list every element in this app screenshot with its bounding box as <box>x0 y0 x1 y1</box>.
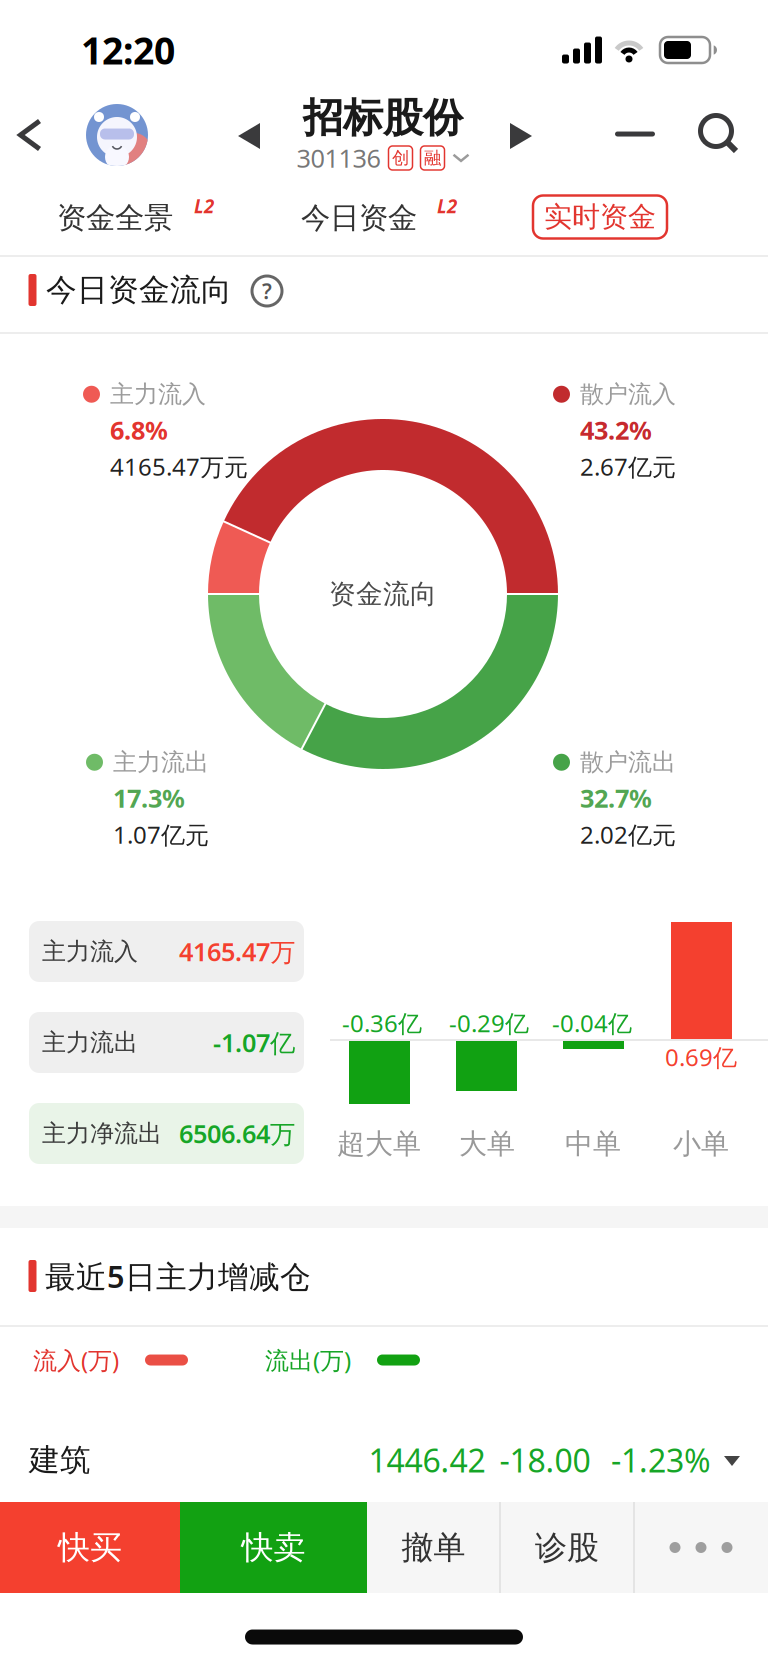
staticText: 超大单 <box>337 1127 421 1161</box>
button[interactable]: Minimize <box>615 131 655 136</box>
staticText: 实时资金 <box>544 200 656 234</box>
staticText: 43.2% <box>580 413 652 447</box>
staticText: 4165.47万元 <box>110 451 248 482</box>
button[interactable]: 诊股 <box>500 1502 634 1593</box>
staticText: 主力流出 <box>42 1028 138 1057</box>
staticText: 主力净流出 <box>42 1119 162 1148</box>
staticText: 资金流向 <box>329 578 437 610</box>
staticText: 主力流入 <box>42 937 138 966</box>
staticText: 快买 <box>58 1528 122 1567</box>
button[interactable]: 快卖 <box>180 1502 367 1593</box>
staticText: 2.67亿元 <box>580 451 676 482</box>
button[interactable]: 今日资金 <box>289 195 429 241</box>
staticText: 建筑 <box>29 1441 91 1479</box>
staticText: -0.36亿 <box>342 1007 422 1039</box>
staticText: 散户流入 <box>580 379 676 409</box>
button[interactable]: More <box>634 1502 768 1593</box>
staticText: 撤单 <box>401 1528 465 1567</box>
staticText: 今日资金流向 <box>46 271 232 309</box>
staticText: 6506.64万 <box>179 1117 295 1150</box>
button[interactable]: 建筑 <box>0 1429 768 1491</box>
staticText: 诊股 <box>535 1528 599 1567</box>
staticText: 招标股份 <box>303 93 463 142</box>
staticText: 主力流出 <box>113 747 209 777</box>
staticText: 1.07亿元 <box>113 819 209 850</box>
staticText: 12:20 <box>81 25 175 75</box>
button[interactable]: Next stock <box>501 116 541 156</box>
button[interactable]: Assistant <box>86 104 148 166</box>
staticText: 流入(万) <box>33 1344 119 1376</box>
staticText: 快卖 <box>241 1528 305 1567</box>
staticText: -0.29亿 <box>449 1007 529 1039</box>
staticText: -1.07亿 <box>213 1026 295 1059</box>
button[interactable]: 实时资金 <box>533 195 667 238</box>
staticText: 融 <box>424 147 441 169</box>
staticText: 散户流出 <box>580 747 676 777</box>
staticText: L2 <box>194 194 214 218</box>
button[interactable]: Back <box>8 113 52 157</box>
staticText: 主力流入 <box>110 379 206 409</box>
staticText: 6.8% <box>110 413 168 447</box>
staticText: 小单 <box>673 1127 729 1161</box>
staticText: -0.04亿 <box>552 1007 632 1039</box>
button[interactable]: Stock info <box>296 141 469 175</box>
staticText: -18.00 <box>499 1439 590 1481</box>
staticText: 创 <box>392 147 409 169</box>
staticText: 流出(万) <box>265 1344 351 1376</box>
staticText: 资金全景 <box>57 200 173 236</box>
staticText: 0.69亿 <box>665 1041 737 1073</box>
staticText: 32.7% <box>580 781 652 815</box>
staticText: 大单 <box>459 1127 515 1161</box>
button[interactable]: Help <box>250 274 283 307</box>
staticText: 2.02亿元 <box>580 819 676 850</box>
button[interactable]: 撤单 <box>367 1502 500 1593</box>
staticText: 17.3% <box>113 781 185 815</box>
button[interactable]: Previous stock <box>229 116 269 156</box>
staticText: 最近5日主力增减仓 <box>45 1256 311 1296</box>
staticText: -1.23% <box>611 1439 711 1481</box>
staticText: ? <box>262 277 272 305</box>
button[interactable]: 资金全景 <box>45 195 185 241</box>
staticText: 1446.42 <box>368 1439 485 1481</box>
staticText: 4165.47万 <box>179 935 295 968</box>
button[interactable]: Search <box>699 114 739 154</box>
staticText: 中单 <box>565 1127 621 1161</box>
staticText: 301136 <box>296 141 380 175</box>
button[interactable]: 快买 <box>0 1502 180 1593</box>
staticText: 今日资金 <box>301 200 417 236</box>
staticText: L2 <box>437 194 457 218</box>
